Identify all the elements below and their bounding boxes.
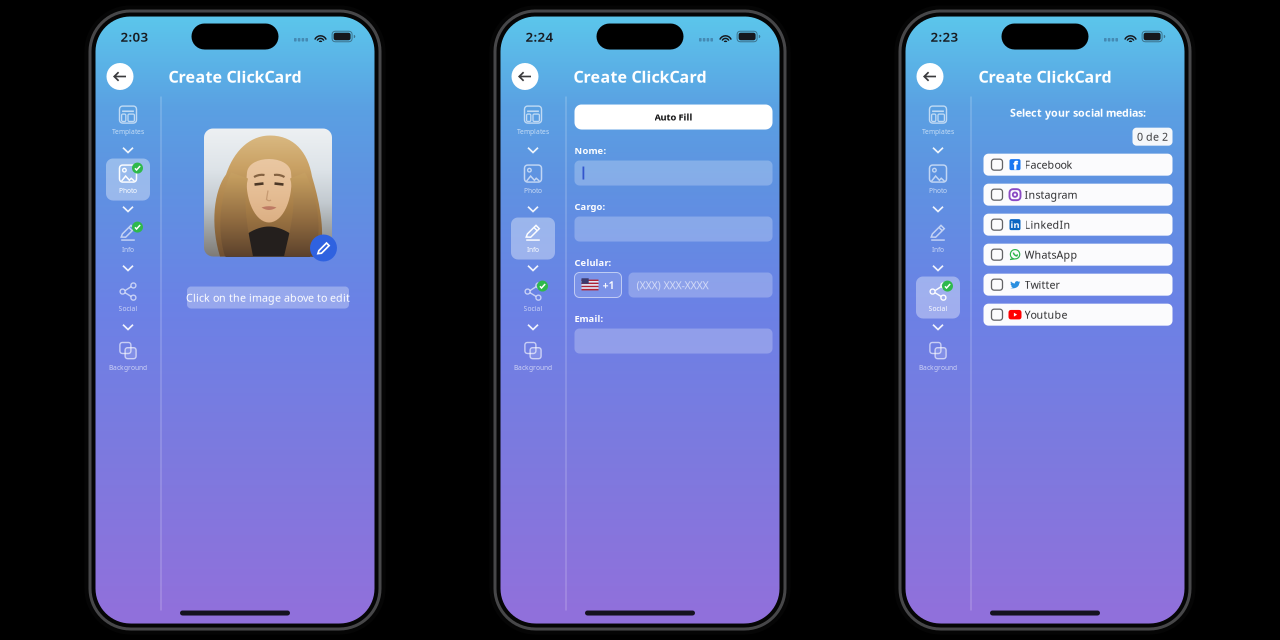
button[interactable] bbox=[574, 160, 772, 185]
button[interactable]: Instagram bbox=[983, 184, 1172, 206]
button[interactable]: Social bbox=[106, 276, 150, 318]
staticText: Celular: bbox=[574, 256, 611, 269]
staticText: Nome: bbox=[574, 144, 606, 157]
staticText: Facebook bbox=[1024, 158, 1072, 172]
button[interactable]: (XXX) XXX-XXXX bbox=[628, 272, 772, 297]
staticText: in bbox=[1010, 218, 1019, 231]
button[interactable]: Edit photo bbox=[310, 234, 337, 261]
button[interactable] bbox=[574, 216, 772, 241]
button[interactable] bbox=[574, 328, 772, 353]
staticText: 2:24 bbox=[525, 28, 553, 45]
button[interactable]: Twitter bbox=[983, 274, 1172, 296]
button[interactable]: Back bbox=[916, 63, 943, 90]
button[interactable]: Background bbox=[106, 335, 150, 377]
button[interactable]: Templates bbox=[106, 99, 150, 141]
button[interactable]: Info bbox=[106, 217, 150, 259]
staticText: WhatsApp bbox=[1024, 248, 1077, 262]
staticText: 2:03 bbox=[120, 28, 148, 45]
button[interactable]: Templates bbox=[511, 99, 555, 141]
staticText: Info bbox=[527, 245, 539, 254]
staticText: Info bbox=[932, 245, 944, 254]
staticText: Click on the image above to edit bbox=[186, 290, 350, 305]
staticText: Photo bbox=[929, 186, 947, 195]
button[interactable]: Youtube bbox=[983, 304, 1172, 326]
staticText: Background bbox=[109, 363, 147, 372]
staticText: Templates bbox=[922, 127, 954, 136]
staticText: Create ClickCard bbox=[168, 66, 301, 87]
staticText: Auto Fill bbox=[654, 111, 692, 123]
button[interactable]: Auto Fill bbox=[574, 104, 772, 129]
staticText: Photo bbox=[119, 186, 137, 195]
staticText: Social bbox=[118, 304, 137, 313]
button[interactable]: f bbox=[983, 154, 1172, 176]
button[interactable]: Background bbox=[511, 335, 555, 377]
button[interactable]: WhatsApp bbox=[983, 244, 1172, 266]
staticText: (XXX) XXX-XXXX bbox=[636, 278, 708, 292]
staticText: 2:23 bbox=[930, 28, 958, 45]
staticText: Background bbox=[919, 363, 957, 372]
staticText: +1 bbox=[602, 278, 614, 292]
button[interactable]: Country code bbox=[574, 272, 621, 297]
staticText: Templates bbox=[112, 127, 144, 136]
button[interactable]: Click on the image above to edit bbox=[187, 286, 349, 308]
button[interactable]: Info bbox=[916, 217, 960, 259]
button[interactable]: Photo bbox=[511, 158, 555, 200]
staticText: Templates bbox=[517, 127, 549, 136]
button[interactable]: Social bbox=[511, 276, 555, 318]
button[interactable]: in bbox=[983, 214, 1172, 236]
staticText: Create ClickCard bbox=[573, 66, 706, 87]
button[interactable]: Back bbox=[511, 63, 538, 90]
staticText: Email: bbox=[574, 312, 603, 325]
staticText: LinkedIn bbox=[1024, 218, 1070, 232]
staticText: Create ClickCard bbox=[978, 66, 1111, 87]
button[interactable]: Profile photo bbox=[204, 128, 332, 256]
button[interactable]: Info bbox=[511, 217, 555, 259]
staticText: Background bbox=[514, 363, 552, 372]
staticText: Youtube bbox=[1024, 308, 1067, 322]
staticText: Info bbox=[122, 245, 134, 254]
button[interactable]: Photo bbox=[916, 158, 960, 200]
staticText: Twitter bbox=[1024, 278, 1059, 292]
button[interactable]: Back bbox=[106, 63, 133, 90]
staticText: f bbox=[1013, 157, 1018, 173]
staticText: Social bbox=[928, 304, 947, 313]
button[interactable]: Templates bbox=[916, 99, 960, 141]
staticText: Select your social medias: bbox=[1010, 105, 1146, 120]
staticText: Instagram bbox=[1024, 188, 1077, 202]
button[interactable]: Social bbox=[916, 276, 960, 318]
staticText: 0 de 2 bbox=[1137, 130, 1168, 144]
staticText: Social bbox=[523, 304, 542, 313]
staticText: Photo bbox=[524, 186, 542, 195]
staticText: Cargo: bbox=[574, 200, 605, 213]
button[interactable]: Photo bbox=[106, 158, 150, 200]
button[interactable]: Background bbox=[916, 335, 960, 377]
